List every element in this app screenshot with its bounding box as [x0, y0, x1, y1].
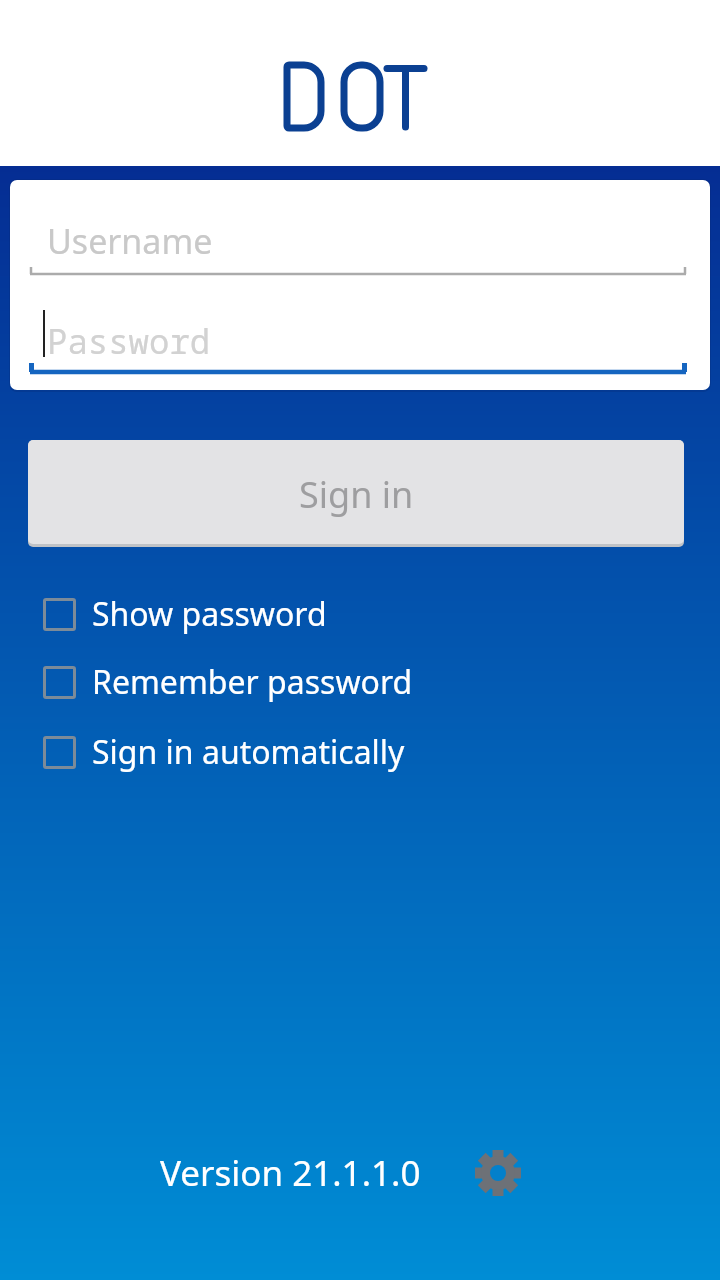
- staticText: Version 21.1.1.0: [160, 1149, 421, 1197]
- button[interactable]: Sign in automatically: [43, 730, 405, 774]
- staticText: Sign in automatically: [92, 730, 405, 774]
- button[interactable]: Sign in: [28, 440, 684, 547]
- staticText: Remember password: [92, 660, 413, 704]
- button[interactable]: Username: [47, 218, 347, 264]
- button[interactable]: Remember password: [43, 660, 413, 704]
- staticText: Password: [47, 318, 211, 364]
- button[interactable]: Password: [47, 318, 347, 364]
- staticText: Sign in: [299, 470, 414, 519]
- button[interactable]: Version 21.1.1.0: [160, 1148, 523, 1198]
- button[interactable]: Show password: [43, 592, 327, 636]
- staticText: Show password: [92, 592, 327, 636]
- staticText: Username: [47, 218, 213, 264]
